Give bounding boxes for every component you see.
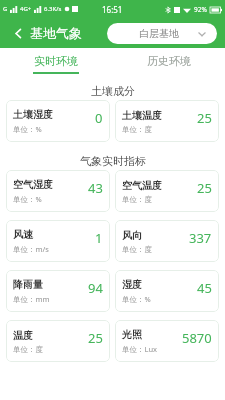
button[interactable]: 降雨量	[6, 270, 110, 312]
button[interactable]: 土壤湿度	[6, 100, 110, 142]
button[interactable]: 空气温度	[115, 170, 219, 212]
staticText: 土壤温度	[122, 109, 162, 122]
staticText: 降雨量	[13, 278, 43, 291]
staticText: 43	[88, 179, 103, 197]
button[interactable]: 温度	[6, 320, 110, 362]
staticText: 94	[88, 279, 103, 297]
button[interactable]: 风向	[115, 220, 219, 262]
staticText: 土壤成分	[91, 84, 135, 98]
staticText: 湿度	[122, 278, 142, 291]
staticText: 温度	[13, 329, 33, 342]
button[interactable]: 土壤温度	[115, 100, 219, 142]
staticText: 25	[88, 329, 103, 347]
staticText: 337	[189, 229, 212, 247]
staticText: 4G+	[20, 5, 32, 13]
staticText: 单位：度	[122, 125, 152, 134]
staticText: 实时环境	[34, 54, 78, 68]
button[interactable]: 历史环境	[112, 48, 225, 76]
staticText: 基地气象	[30, 25, 82, 41]
button[interactable]: 光照	[115, 320, 219, 362]
staticText: 16:51	[102, 4, 123, 15]
staticText: 历史环境	[147, 54, 191, 68]
staticText: G	[3, 5, 8, 13]
staticText: 单位：Lux	[122, 344, 158, 354]
button[interactable]: 风速	[6, 220, 110, 262]
staticText: 单位：%	[122, 294, 151, 304]
staticText: 气象实时指标	[80, 154, 146, 168]
staticText: 5870	[182, 329, 212, 347]
button[interactable]: Back	[8, 23, 28, 43]
staticText: 白层基地	[139, 27, 179, 40]
button[interactable]: 白层基地	[107, 23, 217, 44]
staticText: 土壤湿度	[13, 108, 53, 121]
button[interactable]: 空气湿度	[6, 170, 110, 212]
staticText: 单位：mm	[13, 294, 50, 304]
staticText: 单位：m/s	[13, 244, 49, 254]
staticText: 单位：度	[122, 195, 152, 204]
staticText: 空气湿度	[13, 178, 53, 191]
staticText: 单位：%	[13, 194, 42, 204]
staticText: 92%	[194, 5, 207, 14]
button[interactable]: 湿度	[115, 270, 219, 312]
staticText: 光照	[122, 328, 142, 341]
staticText: 风向	[122, 229, 142, 242]
staticText: 单位：度	[13, 345, 43, 354]
staticText: 25	[197, 109, 212, 127]
staticText: 25	[197, 179, 212, 197]
staticText: 空气温度	[122, 179, 162, 192]
staticText: 单位：度	[122, 245, 152, 254]
staticText: 6.3K/s	[44, 5, 62, 13]
staticText: 1	[95, 229, 103, 247]
staticText: 单位：%	[13, 124, 42, 134]
staticText: 45	[197, 279, 212, 297]
staticText: 风速	[13, 228, 33, 241]
staticText: 0	[95, 109, 103, 127]
button[interactable]: 实时环境	[0, 48, 112, 76]
